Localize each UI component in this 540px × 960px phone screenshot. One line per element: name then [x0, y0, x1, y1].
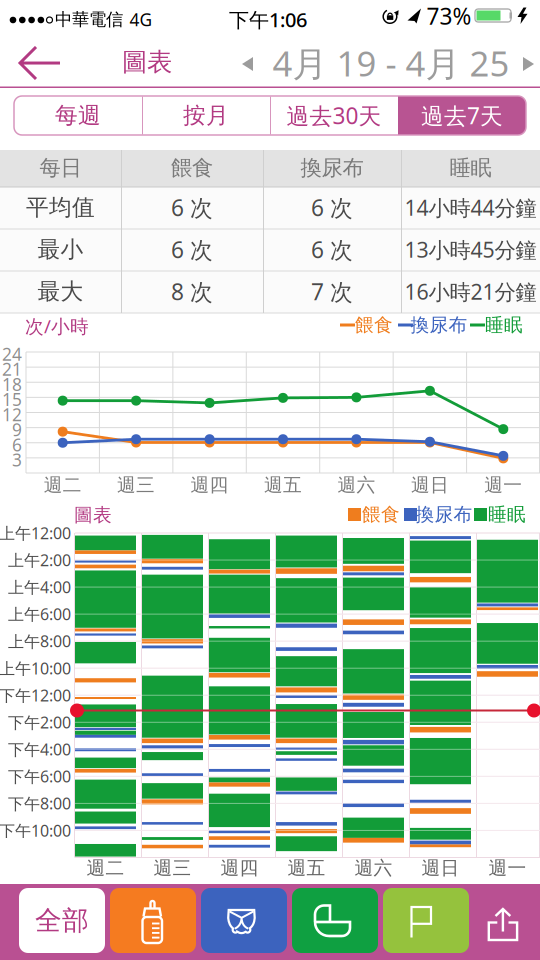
staticText: 上午2:00 [8, 549, 71, 571]
staticText: 9 [12, 418, 22, 441]
staticText: 最小 [37, 236, 83, 263]
staticText: 平均值 [26, 194, 95, 221]
button[interactable]: 全部 [0, 0, 540, 960]
staticText: 週三 [153, 856, 191, 879]
staticText: 餵食 [355, 313, 393, 336]
button[interactable]: 過去7天 [0, 0, 540, 960]
staticText: 週六 [354, 856, 392, 879]
staticText: 週三 [117, 473, 155, 496]
staticText: 週日 [421, 856, 459, 879]
button[interactable]: Next week [0, 0, 540, 960]
staticText: 睡眠 [488, 503, 526, 526]
button[interactable]: Diaper [0, 0, 540, 960]
button[interactable]: Milestones [0, 0, 540, 960]
staticText: 14小時44分鐘 [404, 193, 536, 222]
staticText: 每日 [39, 155, 81, 181]
button[interactable]: Feeding [0, 0, 540, 960]
staticText: 6 次 [171, 234, 213, 264]
staticText: 圖表 [122, 46, 172, 77]
staticText: 下午8:00 [8, 793, 71, 814]
staticText: 下午4:00 [8, 739, 71, 760]
staticText: 18 [2, 373, 22, 396]
staticText: 下午6:00 [8, 766, 71, 787]
button[interactable]: 按月 [0, 0, 540, 960]
staticText: 全部 [35, 904, 89, 937]
staticText: 4G [129, 8, 152, 31]
staticText: 餵食 [171, 155, 213, 181]
staticText: 12 [2, 403, 22, 426]
staticText: 上午4:00 [8, 576, 71, 598]
staticText: 下午1:06 [229, 6, 307, 33]
staticText: 下午12:00 [0, 685, 71, 706]
button[interactable]: 每週 [0, 0, 540, 960]
staticText: 8 次 [171, 276, 213, 306]
staticText: 16小時21分鐘 [404, 277, 536, 306]
staticText: 上午6:00 [8, 603, 71, 625]
staticText: 3 [12, 448, 22, 471]
staticText: 24 [2, 342, 22, 365]
staticText: 上午8:00 [8, 630, 71, 652]
button[interactable]: Sleep [0, 0, 540, 960]
staticText: 每週 [55, 102, 101, 129]
button[interactable]: Back [0, 0, 540, 960]
staticText: 4月 19 - 4月 25 [272, 40, 509, 86]
staticText: 6 次 [171, 192, 213, 222]
staticText: 中華電信 [55, 9, 123, 30]
staticText: 週一 [488, 856, 526, 879]
staticText: 週一 [484, 473, 522, 496]
staticText: 週四 [220, 856, 258, 879]
staticText: 換尿布 [415, 503, 472, 526]
staticText: 下午10:00 [0, 820, 71, 841]
staticText: 餵食 [362, 503, 400, 526]
button[interactable]: Share [0, 0, 540, 960]
staticText: 7 次 [311, 276, 353, 306]
staticText: 週五 [287, 856, 325, 879]
staticText: 6 次 [311, 192, 353, 222]
staticText: 最大 [37, 278, 83, 305]
staticText: 睡眠 [449, 155, 491, 181]
staticText: 21 [2, 358, 22, 381]
staticText: 週二 [86, 856, 124, 879]
staticText: 按月 [183, 102, 229, 129]
staticText: 6 [12, 433, 22, 456]
staticText: 換尿布 [300, 155, 363, 181]
staticText: 過去7天 [421, 100, 503, 130]
staticText: 次/小時 [25, 314, 89, 338]
staticText: 睡眠 [485, 313, 523, 336]
staticText: 上午10:00 [0, 658, 71, 679]
staticText: 週二 [44, 473, 82, 496]
staticText: 6 次 [311, 234, 353, 264]
staticText: 週日 [411, 473, 449, 496]
staticText: 15 [2, 388, 22, 411]
staticText: 週六 [337, 473, 375, 496]
staticText: 過去30天 [286, 100, 381, 130]
staticText: 13小時45分鐘 [404, 235, 536, 264]
staticText: 圖表 [74, 503, 112, 526]
staticText: 73% [426, 1, 471, 31]
staticText: 上午12:00 [0, 522, 71, 544]
staticText: 換尿布 [410, 313, 467, 336]
button[interactable]: 過去30天 [0, 0, 540, 960]
staticText: 週四 [191, 473, 229, 496]
staticText: 週五 [264, 473, 302, 496]
button[interactable]: Previous week [0, 0, 540, 960]
staticText: 下午2:00 [8, 712, 71, 733]
